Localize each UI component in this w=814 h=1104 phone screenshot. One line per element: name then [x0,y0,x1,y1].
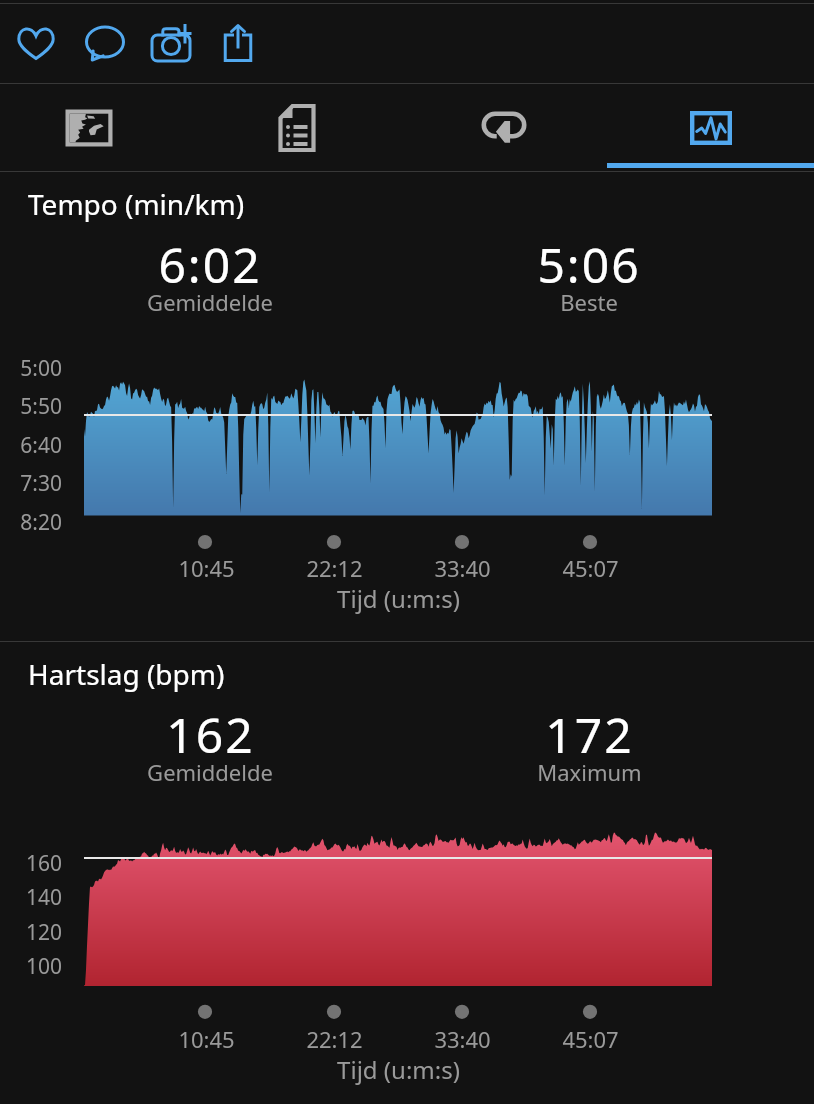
staticText: 7:30 [20,469,62,498]
staticText: 120 [25,918,62,947]
staticText: 10:45 [178,1024,235,1054]
staticText: 8:20 [20,508,62,537]
staticText: 160 [25,849,62,878]
staticText: Gemiddelde [147,757,273,787]
staticText: 33:40 [434,1024,491,1054]
button[interactable]: Splits [193,84,400,171]
staticText: 140 [25,883,62,912]
staticText: 172 [545,702,634,767]
staticText: 22:12 [306,553,363,583]
staticText: 33:40 [434,553,491,583]
staticText: Hartslag (bpm) [28,655,225,693]
staticText: 45:07 [562,1024,619,1054]
button[interactable]: Map [0,84,192,171]
staticText: 5:00 [20,354,62,383]
staticText: 162 [166,702,255,767]
staticText: Maximum [537,757,642,787]
staticText: Gemiddelde [147,287,273,317]
staticText: 5:06 [537,232,641,297]
staticText: Tempo (min/km) [28,185,245,223]
button[interactable]: Comment [79,17,131,69]
button[interactable]: Like [10,17,62,69]
staticText: 6:40 [20,431,62,460]
button[interactable]: Graphs [607,84,814,171]
button[interactable]: Add photo [145,15,197,67]
staticText: 5:50 [20,392,62,421]
staticText: 100 [25,952,62,981]
button[interactable]: Laps [400,84,607,171]
staticText: 10:45 [178,553,235,583]
staticText: Beste [560,287,618,317]
button[interactable]: Share [212,17,264,69]
staticText: Tijd (u:m:s) [337,1053,460,1086]
staticText: 22:12 [306,1024,363,1054]
staticText: 45:07 [562,553,619,583]
staticText: 6:02 [158,232,262,297]
staticText: Tijd (u:m:s) [337,582,460,615]
